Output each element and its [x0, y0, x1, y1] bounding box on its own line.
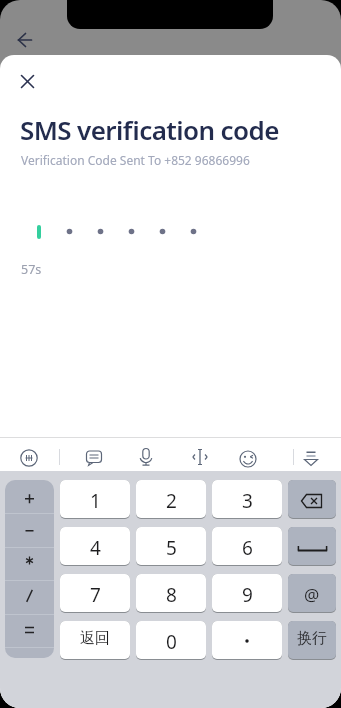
button[interactable]: 返回: [60, 621, 130, 660]
staticText: 返回: [80, 629, 110, 648]
staticText: 换行: [297, 629, 327, 648]
staticText: 6: [242, 535, 253, 561]
button[interactable]: 2: [136, 480, 206, 519]
button[interactable]: [5, 513, 54, 546]
button[interactable]: [5, 480, 54, 513]
staticText: 0: [166, 629, 177, 655]
button[interactable]: 6: [212, 527, 282, 566]
button[interactable]: @: [288, 574, 336, 613]
button[interactable]: [133, 444, 159, 470]
button[interactable]: [5, 614, 54, 647]
button[interactable]: 换行: [288, 621, 336, 660]
staticText: 2: [166, 488, 177, 514]
button[interactable]: [5, 580, 54, 613]
button[interactable]: 7: [60, 574, 130, 613]
button[interactable]: 0: [136, 621, 206, 660]
staticText: 1: [90, 488, 101, 514]
button[interactable]: 5: [136, 527, 206, 566]
button[interactable]: 8: [136, 574, 206, 613]
staticText: 57s: [21, 261, 42, 278]
button[interactable]: [20, 215, 220, 247]
button[interactable]: [12, 27, 38, 52]
button[interactable]: [187, 444, 213, 470]
staticText: 5: [166, 535, 177, 561]
staticText: 3: [242, 488, 253, 514]
button[interactable]: 9: [212, 574, 282, 613]
button[interactable]: [298, 444, 324, 470]
staticText: 8: [166, 582, 177, 608]
button[interactable]: [288, 527, 336, 566]
button[interactable]: [235, 446, 261, 472]
button[interactable]: 4: [60, 527, 130, 566]
staticText: 9: [242, 582, 253, 608]
button[interactable]: [16, 445, 42, 471]
staticText: Verification Code Sent To +852 96866996: [21, 152, 250, 168]
staticText: @: [304, 583, 320, 606]
button[interactable]: [212, 621, 282, 660]
button[interactable]: [14, 68, 40, 94]
staticText: 7: [90, 582, 101, 608]
staticText: 4: [90, 535, 101, 561]
button[interactable]: [5, 547, 54, 580]
button[interactable]: [81, 444, 107, 470]
staticText: SMS verification code: [20, 112, 279, 147]
button[interactable]: 3: [212, 480, 282, 519]
button[interactable]: [288, 480, 336, 519]
button[interactable]: 1: [60, 480, 130, 519]
